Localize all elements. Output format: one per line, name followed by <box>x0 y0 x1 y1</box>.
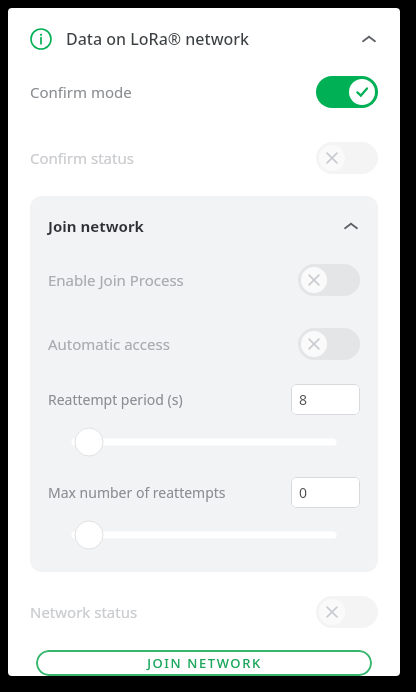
staticText: Max number of reattempts <box>48 483 226 502</box>
button[interactable]: JOIN NETWORK <box>36 650 372 676</box>
button[interactable]: Confirm mode <box>8 70 400 114</box>
staticText: Join network <box>48 216 144 236</box>
button[interactable]: Data on LoRa® network <box>8 24 400 54</box>
button[interactable]: Enable Join Process <box>30 258 378 302</box>
button[interactable]: Reattempt period (s) <box>30 425 378 459</box>
staticText: Reattempt period (s) <box>48 390 183 409</box>
staticText: Automatic access <box>48 334 170 354</box>
staticText: Network status <box>30 602 138 622</box>
button[interactable]: Max number of reattempts <box>30 518 378 552</box>
button[interactable]: Join network <box>30 210 378 242</box>
other: On <box>316 76 378 108</box>
staticText: 0 <box>299 483 308 502</box>
staticText: 8 <box>299 390 308 409</box>
staticText: JOIN NETWORK <box>147 654 262 672</box>
other: Off <box>316 142 378 174</box>
button[interactable]: Network status <box>8 590 400 634</box>
button[interactable]: 8 <box>291 384 360 415</box>
other: Collapse <box>342 217 360 235</box>
staticText: Confirm status <box>30 148 134 168</box>
button[interactable]: 0 <box>291 477 360 508</box>
button[interactable]: Automatic access <box>30 322 378 366</box>
other: Off <box>316 596 378 628</box>
other: Collapse <box>360 30 378 48</box>
staticText: Enable Join Process <box>48 270 184 290</box>
other: Off <box>298 264 360 296</box>
staticText: Data on LoRa® network <box>66 28 250 50</box>
other: Off <box>298 328 360 360</box>
staticText: Confirm mode <box>30 82 132 102</box>
button[interactable]: Confirm status <box>8 136 400 180</box>
